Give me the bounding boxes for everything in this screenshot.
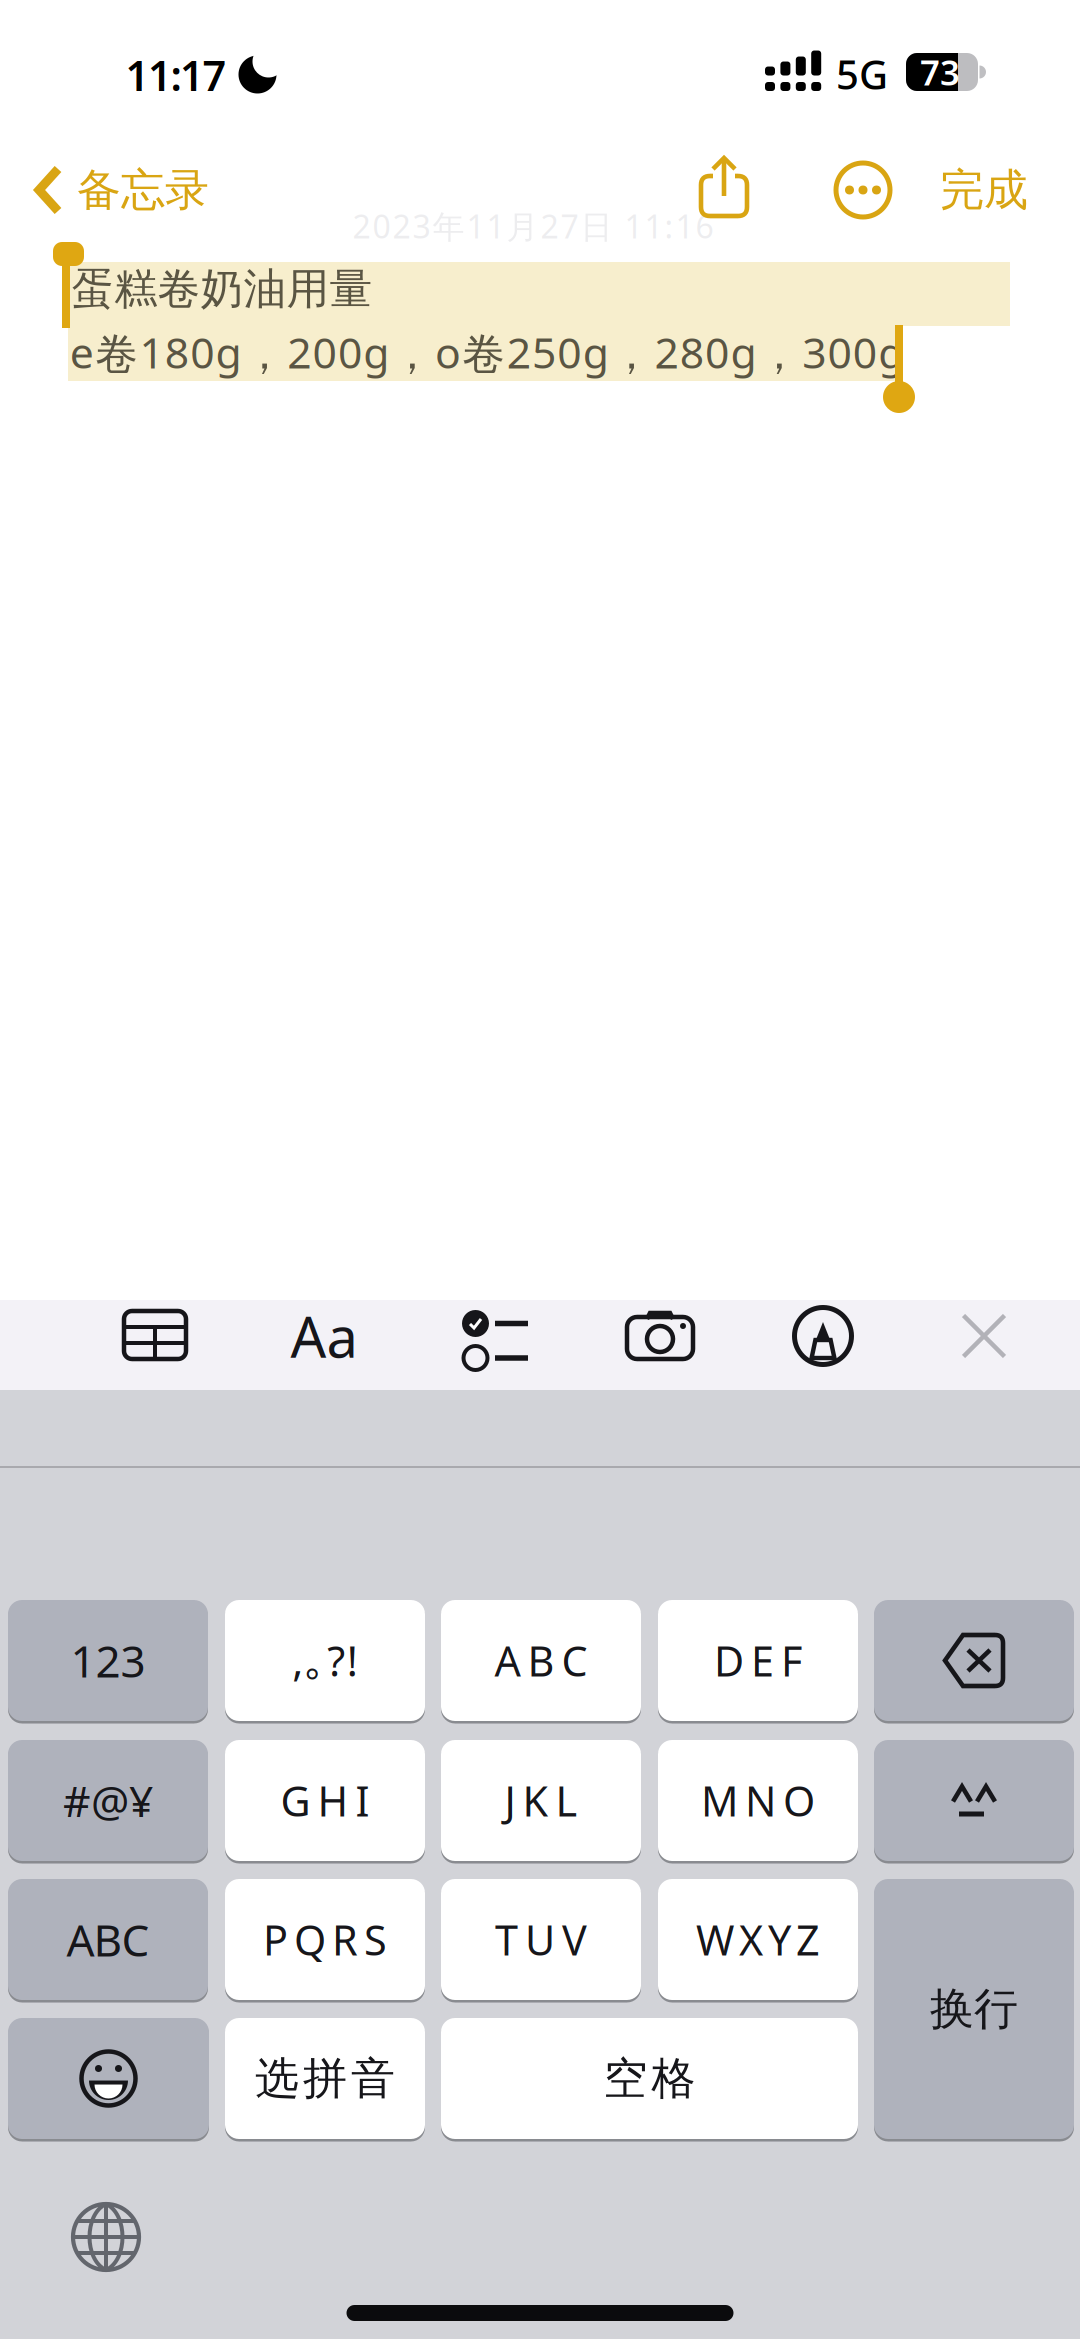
button[interactable]: 标记 bbox=[794, 1307, 852, 1365]
staticText: 换行 bbox=[930, 1982, 1018, 2036]
staticText: ,｡?! bbox=[292, 1633, 358, 1688]
staticText: 蛋糕卷奶油用量 bbox=[71, 263, 372, 315]
staticText: MNO bbox=[701, 1773, 815, 1828]
button[interactable]: 相机 bbox=[627, 1311, 695, 1361]
button[interactable]: PQRS bbox=[225, 1879, 425, 2002]
button[interactable]: MNO bbox=[658, 1740, 858, 1863]
staticText: e卷180g，200g，o卷250g，280g，300g bbox=[70, 324, 904, 380]
button[interactable]: 删除 bbox=[874, 1600, 1074, 1723]
staticText: 73 bbox=[920, 49, 960, 95]
staticText: GHI bbox=[280, 1773, 369, 1828]
button[interactable]: 表格 bbox=[124, 1311, 188, 1361]
staticText: 空格 bbox=[603, 2051, 695, 2105]
staticText: JKL bbox=[504, 1773, 577, 1828]
button[interactable]: 完成 bbox=[940, 163, 1028, 217]
button[interactable]: ABC bbox=[441, 1600, 641, 1723]
staticText: 5G bbox=[836, 47, 888, 100]
button[interactable]: GHI bbox=[225, 1740, 425, 1863]
button[interactable]: TUV bbox=[441, 1879, 641, 2002]
button[interactable]: 换行 bbox=[874, 1879, 1074, 2141]
staticText: 11:17 bbox=[125, 48, 226, 102]
button[interactable]: WXYZ bbox=[658, 1879, 858, 2002]
staticText: DEF bbox=[714, 1633, 802, 1688]
button[interactable]: ,｡?! bbox=[225, 1600, 425, 1723]
button[interactable]: 表情 bbox=[8, 2018, 209, 2141]
button[interactable]: DEF bbox=[658, 1600, 858, 1723]
button[interactable]: 更多 bbox=[835, 162, 891, 218]
button[interactable]: 关闭 bbox=[961, 1313, 1006, 1358]
staticText: WXYZ bbox=[696, 1912, 820, 1967]
staticText: ABC bbox=[66, 1910, 149, 1969]
button[interactable]: JKL bbox=[441, 1740, 641, 1863]
staticText: Aa bbox=[290, 1299, 357, 1373]
staticText: PQRS bbox=[263, 1912, 387, 1967]
button[interactable]: 返回备忘录 bbox=[34, 166, 214, 214]
button[interactable]: 分词 bbox=[874, 1740, 1074, 1863]
staticText: 123 bbox=[70, 1631, 145, 1690]
staticText: #@¥ bbox=[63, 1772, 153, 1829]
button[interactable]: 核对清单 bbox=[461, 1309, 527, 1371]
staticText: ABC bbox=[494, 1633, 587, 1688]
button[interactable]: 格式 bbox=[290, 1299, 357, 1373]
staticText: 备忘录 bbox=[77, 163, 209, 217]
button[interactable]: ABC bbox=[8, 1879, 208, 2002]
staticText: 完成 bbox=[940, 163, 1028, 217]
button[interactable]: 下一个键盘 bbox=[71, 2202, 141, 2272]
button[interactable]: 分享 bbox=[699, 156, 749, 218]
button[interactable]: #@¥ bbox=[8, 1740, 208, 1863]
staticText: 2023年11月27日 11:16 bbox=[352, 205, 713, 247]
staticText: TUV bbox=[495, 1912, 587, 1967]
button[interactable]: 123 bbox=[8, 1600, 208, 1723]
button[interactable]: 空格 bbox=[441, 2018, 858, 2141]
button[interactable]: 选拼音 bbox=[225, 2018, 425, 2141]
staticText: 选拼音 bbox=[255, 2051, 395, 2105]
